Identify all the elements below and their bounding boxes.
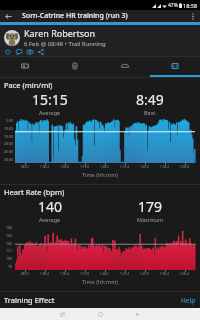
button[interactable]: Photos [24,48,35,56]
staticText: 1:09:4 [60,272,70,276]
staticText: 1:37:4 [120,165,130,169]
button[interactable]: Profile photo [4,30,20,46]
staticText: 1:00:2 [40,272,50,276]
staticText: 18:58 [183,2,198,9]
staticText: 15:15 [32,90,68,109]
button[interactable]: Gear [100,57,150,75]
staticText: 15:00 [4,134,13,139]
staticText: Average [39,109,61,116]
staticText: 47% [168,2,178,9]
staticText: 163 [6,233,13,238]
button[interactable]: Charts [150,57,200,75]
button[interactable]: Rotate screen [49,308,75,320]
button[interactable]: Splits [50,57,100,75]
staticText: 1:56:2 [160,165,170,169]
button[interactable]: Like [2,48,13,56]
staticText: 1:37:4 [120,272,130,276]
button[interactable]: Home [87,308,113,320]
button[interactable]: Navigate up [0,10,16,22]
button[interactable]: Map [0,57,50,75]
staticText: Heart Rate (bpm) [4,187,65,197]
staticText: 25:00 [4,149,13,154]
staticText: 140 [38,197,63,216]
staticText: 1:09:4 [60,165,70,169]
staticText: Sorn-Catrine HR training (run 3) [22,11,186,21]
staticText: 1:00:2 [40,165,50,169]
staticText: 08:51 [21,165,30,169]
staticText: 2:05:4 [180,272,190,276]
staticText: 100 [6,256,13,261]
staticText: 142 [6,241,13,246]
button[interactable]: Back [124,308,150,320]
staticText: 20:00 [4,141,13,146]
staticText: 2:05:4 [180,165,190,169]
staticText: 1:28:2 [100,165,110,169]
staticText: Help [181,296,196,305]
staticText: Average [39,216,61,223]
staticText: Karen Robertson [24,27,96,39]
staticText: 184 [6,225,13,230]
button[interactable]: More options [186,10,200,22]
staticText: 6 Feb @ 08:48 • Trail Running [24,40,106,48]
staticText: 179 [138,197,163,216]
staticText: 1:28:2 [100,272,110,276]
staticText: Pace (min/mi) [4,80,53,90]
staticText: 1:47:0 [140,165,150,169]
staticText: 8:49 [136,90,164,109]
staticText: Maximum [137,216,164,223]
button[interactable]: Help [179,295,198,306]
staticText: 79 [8,264,13,269]
staticText: Best [144,109,156,116]
staticText: 1:19:0 [80,272,90,276]
staticText: 1:56:2 [160,272,170,276]
staticText: Time (hh:mm) [0,278,200,285]
staticText: 121 [6,248,13,253]
staticText: 10:00 [4,126,13,131]
staticText: Training Effect [4,295,55,305]
button[interactable]: Comment [13,48,24,56]
staticText: 5:00 [6,118,13,123]
staticText: Time (hh:mm) [0,171,200,178]
staticText: 1:19:0 [80,165,90,169]
staticText: 30:00 [4,157,13,162]
staticText: 08:51 [21,272,30,276]
button[interactable]: Share [35,48,46,56]
staticText: 1:47:0 [140,272,150,276]
